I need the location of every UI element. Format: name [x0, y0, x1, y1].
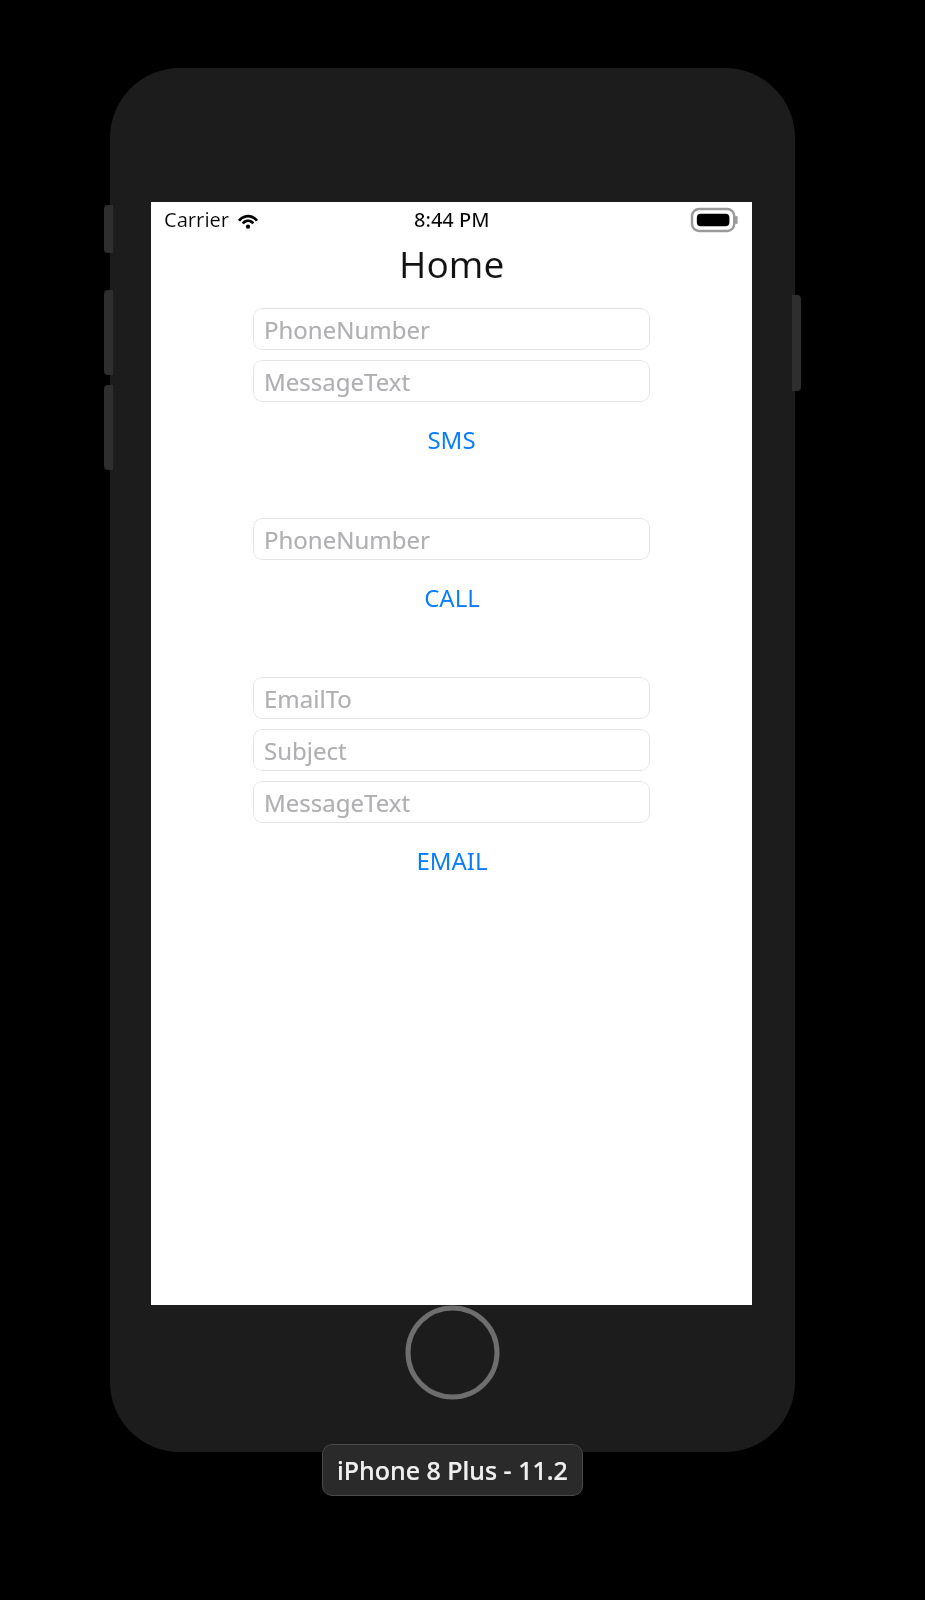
button[interactable]: MessageText [253, 360, 650, 402]
button[interactable]: PhoneNumber [253, 308, 650, 350]
button[interactable]: EmailTo [253, 677, 650, 719]
staticText: EMAIL [416, 844, 488, 877]
staticText: Home [399, 238, 505, 288]
button[interactable]: CALL [253, 581, 650, 614]
staticText: Carrier [164, 206, 230, 233]
button[interactable]: SMS [253, 423, 650, 456]
button[interactable]: Home [405, 1305, 500, 1400]
staticText: iPhone 8 Plus - 11.2 [337, 1453, 568, 1487]
button[interactable]: MessageText [253, 781, 650, 823]
staticText: CALL [424, 581, 480, 614]
button[interactable]: PhoneNumber [253, 518, 650, 560]
staticText: SMS [427, 423, 476, 456]
staticText: PhoneNumber [264, 313, 430, 346]
staticText: MessageText [264, 786, 411, 819]
staticText: Subject [264, 734, 347, 767]
button[interactable]: EMAIL [253, 844, 650, 877]
staticText: EmailTo [264, 682, 352, 715]
staticText: 8:44 PM [414, 206, 490, 233]
button[interactable]: Subject [253, 729, 650, 771]
staticText: MessageText [264, 365, 411, 398]
staticText: PhoneNumber [264, 523, 430, 556]
